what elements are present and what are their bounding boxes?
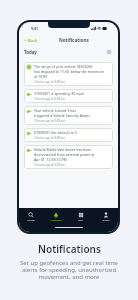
staticText: The range of your vehicle 34562066 [34,64,93,69]
button[interactable]: Account [93,211,118,223]
staticText: Notifications [50,219,62,222]
staticText: Tracking [27,219,35,222]
button[interactable]: The range of your vehicle 34562066 [24,62,113,86]
button[interactable]: 31003901 is speeding: 85 mph [24,89,113,103]
button[interactable]: Tracking [19,211,43,223]
staticText: of 10.8V [34,74,48,79]
staticText: triggered a Vehicle Security Alarm. [34,113,91,118]
staticText: 9:41 [31,26,39,31]
button[interactable]: Fleet [68,211,93,223]
staticText: 3 hours ago at 9:08 am [34,136,66,140]
staticText: 3 hours ago at 9:08 am [34,97,66,101]
button[interactable]: 67890091 has exited Lot 3 [24,128,113,142]
staticText: has dropped to 11.6V, below the minimum [34,69,104,74]
staticText: 67890091 has exited Lot 3 [34,130,77,135]
staticText: Notifications [38,242,101,256]
staticText: Fleet [78,219,83,222]
staticText: Today [24,49,37,55]
staticText: 3 hours ago at 9:08 am [34,80,66,84]
staticText: Account [102,219,110,222]
staticText: Your vehicle Lizzard 3 has [34,108,76,113]
button[interactable]: Back [23,36,39,45]
button[interactable]: Vehicle Marta Vale device has been [24,145,113,169]
staticText: Apr 01, 12:59:13 PM [34,157,67,162]
staticText: 3 hours ago at 9:08 am [34,163,66,167]
staticText: disconnected from external power at [34,152,95,157]
staticText: Vehicle Marta Vale device has been [34,147,92,152]
staticText: 31003901 is speeding: 85 mph [34,91,84,96]
staticText: Notifications [59,37,89,43]
button[interactable]: More options [105,48,113,56]
staticText: Back [28,38,38,43]
button[interactable]: Your vehicle Lizzard 3 has [24,106,113,125]
button[interactable]: Notifications [43,211,68,223]
staticText: Set up geofences and get real time alert… [20,259,118,281]
staticText: 3 hours ago at 9:08 am [34,119,66,123]
